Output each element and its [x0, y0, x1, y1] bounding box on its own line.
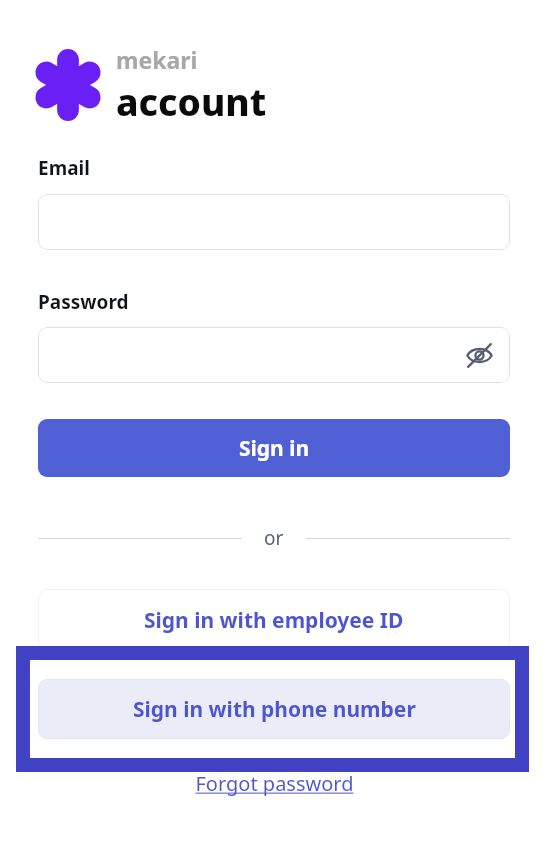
staticText: Password — [38, 289, 129, 315]
staticText: Sign in — [239, 434, 310, 463]
button[interactable]: Email input field — [38, 194, 510, 250]
button[interactable]: Sign in with employee ID — [38, 589, 510, 651]
button[interactable]: Show password — [462, 338, 496, 372]
button[interactable]: Sign in — [38, 419, 510, 477]
staticText: account — [116, 76, 267, 126]
button[interactable]: Forgot password — [191, 766, 358, 801]
button[interactable]: Sign in with phone number — [38, 679, 510, 739]
button[interactable]: Password input field — [38, 327, 510, 383]
staticText: Sign in with employee ID — [144, 606, 404, 635]
staticText: Sign in with phone number — [133, 695, 416, 724]
staticText: Forgot password — [195, 770, 354, 797]
staticText: or — [264, 525, 284, 551]
staticText: Email — [38, 155, 90, 181]
staticText: mekari — [116, 44, 198, 75]
